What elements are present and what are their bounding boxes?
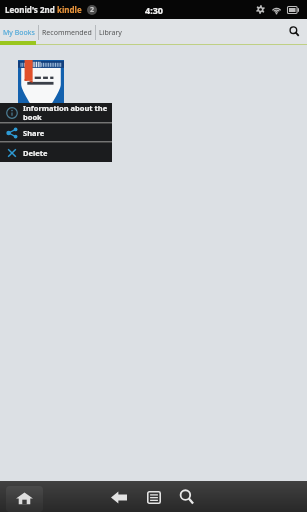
button[interactable]: Search [176, 486, 198, 508]
staticText: Leonid's 2nd [5, 4, 57, 15]
button[interactable]: Delete [0, 143, 112, 162]
button[interactable]: Information about the book [0, 103, 112, 122]
button[interactable]: Home [6, 486, 43, 512]
staticText: Recommended [42, 28, 92, 38]
button[interactable]: Back [108, 486, 130, 508]
button[interactable]: Share [0, 124, 112, 141]
button[interactable]: Search [281, 20, 307, 42]
button[interactable]: Menu [143, 486, 165, 508]
staticText: Library [99, 28, 122, 38]
button[interactable] [18, 60, 64, 122]
staticText: 4:30 [145, 4, 163, 16]
staticText: Delete [23, 148, 48, 158]
staticText: Information about the book [23, 103, 108, 122]
button[interactable]: My Books [0, 22, 38, 43]
staticText: Share [23, 128, 45, 138]
staticText: 2 [90, 5, 95, 15]
button[interactable]: Recommended [39, 22, 95, 43]
staticText: My Books [3, 28, 35, 38]
button[interactable]: Library [96, 22, 125, 43]
staticText: kindle [57, 4, 82, 15]
